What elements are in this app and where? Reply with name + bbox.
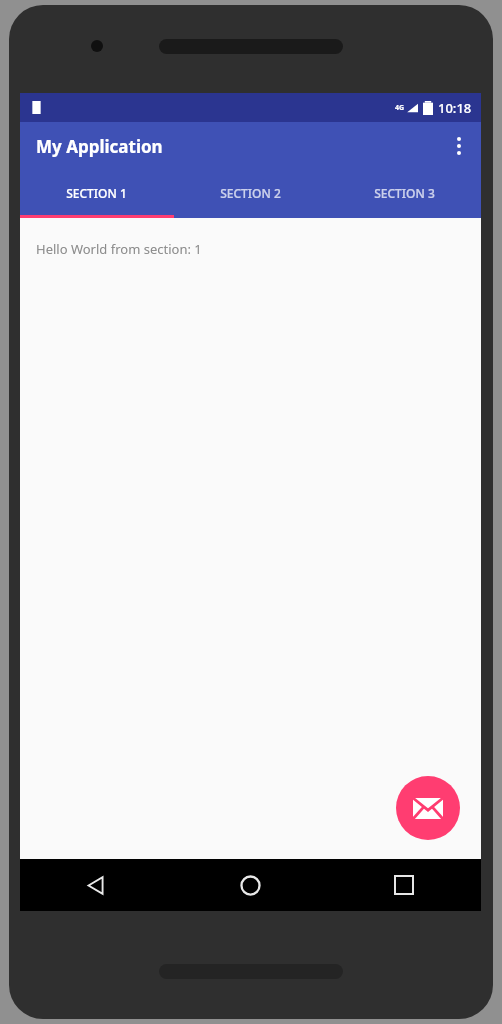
staticText: SECTION 1 [66, 185, 127, 201]
button[interactable]: Back [20, 859, 173, 911]
staticText: 10:18 [438, 99, 472, 117]
staticText: My Application [36, 135, 163, 158]
button[interactable]: Compose email [396, 776, 460, 840]
button[interactable]: SECTION 3 [327, 170, 481, 215]
button[interactable]: Home [173, 859, 327, 911]
staticText: Hello World from section: 1 [36, 240, 202, 258]
button[interactable]: Recent apps [327, 859, 481, 911]
staticText: SECTION 2 [220, 185, 281, 201]
staticText: SECTION 3 [374, 185, 435, 201]
staticText: 4G [395, 103, 405, 113]
button[interactable]: More options [437, 122, 481, 170]
button[interactable]: SECTION 1 [20, 170, 173, 215]
button[interactable]: SECTION 2 [173, 170, 327, 215]
